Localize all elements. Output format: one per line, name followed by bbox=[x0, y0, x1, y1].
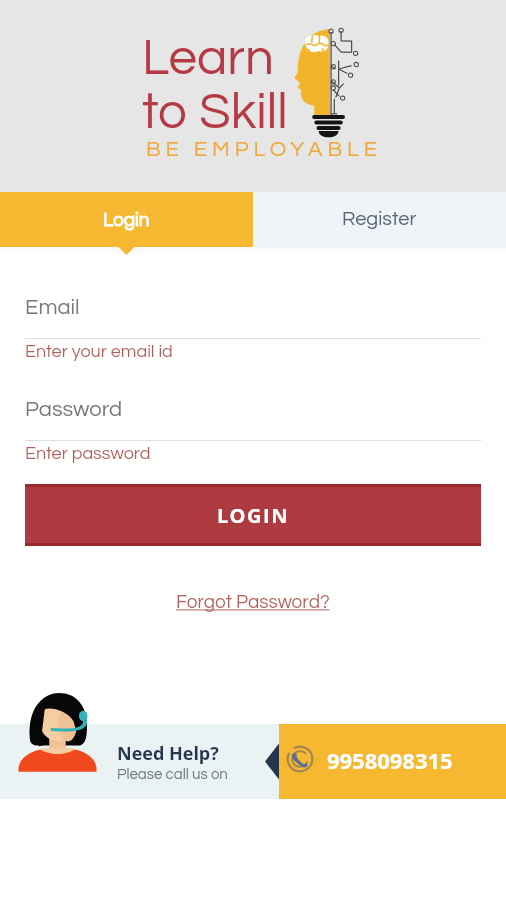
button[interactable]: Login bbox=[0, 192, 253, 247]
other: Call 9958098315 bbox=[286, 745, 314, 773]
staticText: Forgot Password? bbox=[176, 592, 330, 612]
button[interactable]: Forgot Password? bbox=[172, 590, 334, 614]
staticText: BE EMPLOYABLE bbox=[146, 138, 383, 161]
button[interactable] bbox=[0, 724, 279, 799]
staticText: Register bbox=[342, 209, 417, 230]
button[interactable] bbox=[279, 724, 506, 799]
staticText: Need Help? bbox=[117, 741, 219, 766]
staticText: Enter password bbox=[25, 444, 151, 463]
staticText: LOGIN bbox=[217, 502, 290, 529]
button[interactable]: Register bbox=[253, 192, 506, 247]
staticText: Login bbox=[103, 210, 150, 230]
staticText: 9958098315 bbox=[327, 745, 453, 775]
staticText: Email bbox=[25, 296, 80, 319]
button[interactable]: LOGIN bbox=[25, 484, 481, 546]
staticText: Password bbox=[25, 398, 123, 421]
staticText: Enter your email id bbox=[25, 342, 173, 361]
staticText: Please call us on bbox=[117, 767, 228, 782]
staticText: to Skill bbox=[142, 86, 288, 139]
staticText: Learn bbox=[142, 32, 274, 85]
